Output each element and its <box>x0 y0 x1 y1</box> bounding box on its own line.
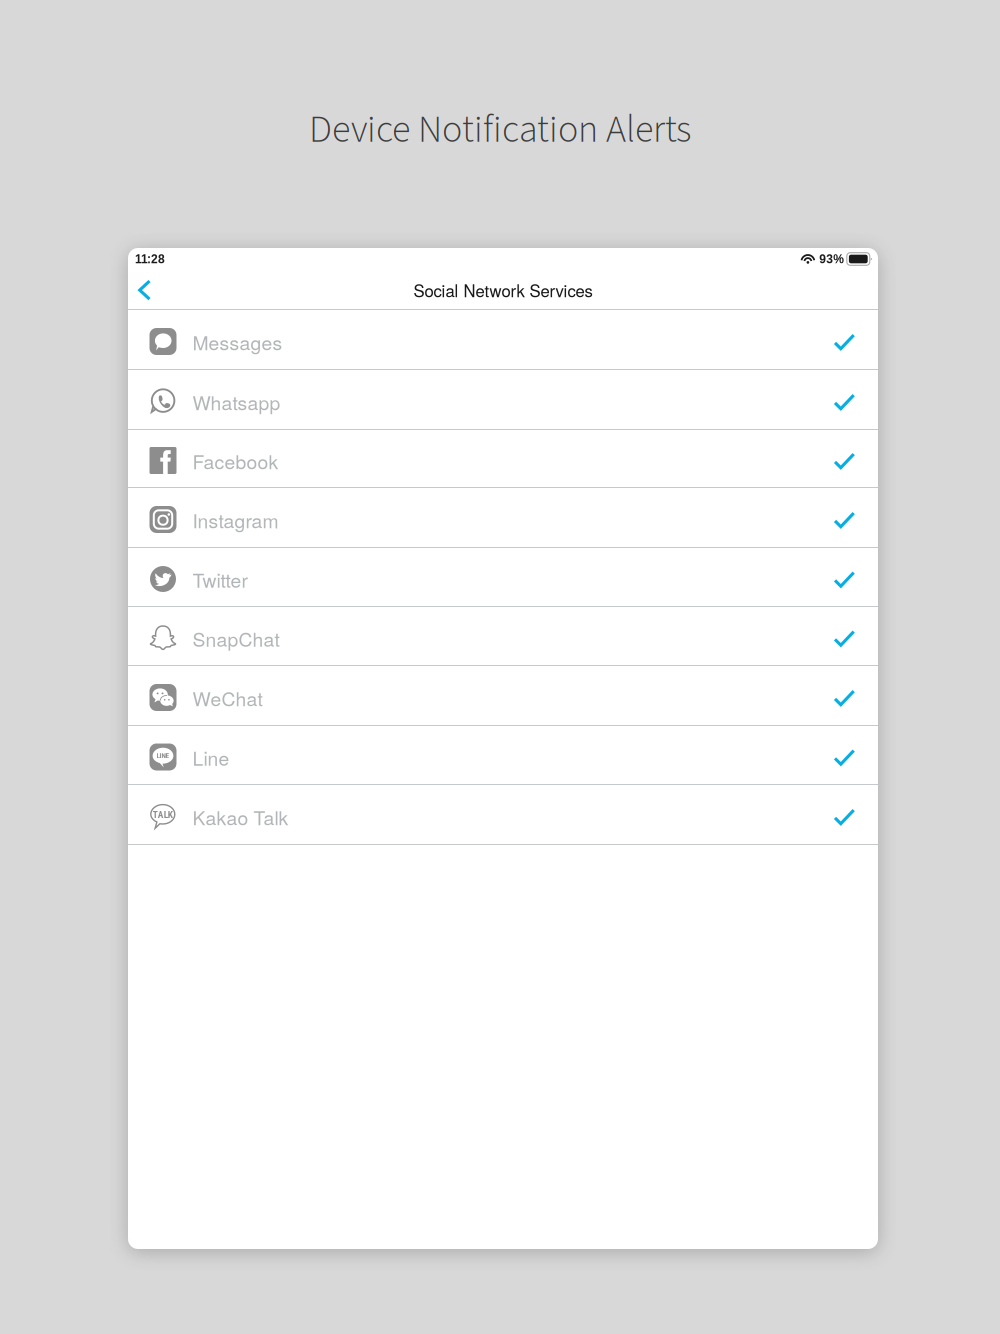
staticText: Twitter <box>192 566 247 593</box>
button[interactable]: Back <box>128 270 161 310</box>
staticText: Whatsapp <box>192 388 280 416</box>
staticText: Kakao Talk <box>192 803 288 831</box>
staticText: LINE <box>156 752 169 760</box>
button[interactable]: Instagram <box>128 488 878 548</box>
button[interactable]: WeChat <box>128 666 878 726</box>
staticText: SnapChat <box>192 625 279 652</box>
staticText: Facebook <box>192 447 278 475</box>
staticText: 11:28 <box>135 252 165 266</box>
staticText: Instagram <box>192 506 278 534</box>
button[interactable]: LINE <box>128 726 878 785</box>
staticText: Device Notification Alerts <box>309 103 691 157</box>
button[interactable]: Twitter <box>128 548 878 607</box>
button[interactable]: Facebook <box>128 430 878 488</box>
staticText: Messages <box>192 328 282 356</box>
staticText: TALK <box>153 809 173 820</box>
staticText: 93% <box>819 252 844 266</box>
button[interactable]: SnapChat <box>128 607 878 666</box>
staticText: WeChat <box>192 684 262 712</box>
staticText: Social Network Services <box>413 278 592 302</box>
staticText: Line <box>192 744 229 771</box>
button[interactable]: Messages <box>128 310 878 370</box>
button[interactable]: TALK <box>128 785 878 845</box>
button[interactable]: Whatsapp <box>128 370 878 430</box>
